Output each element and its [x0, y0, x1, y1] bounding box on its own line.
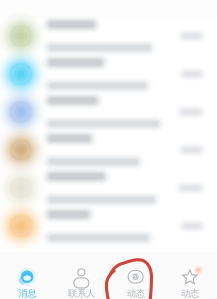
button[interactable]	[0, 207, 217, 245]
button[interactable]	[0, 55, 217, 93]
button[interactable]: 动态	[108, 252, 163, 299]
button[interactable]: 联系人	[54, 252, 108, 299]
staticText: 动态	[127, 288, 145, 299]
button[interactable]	[0, 17, 217, 55]
button[interactable]	[0, 131, 217, 169]
staticText: 联系人	[68, 288, 95, 299]
staticText: 消息	[18, 288, 36, 299]
staticText: 动态	[181, 288, 199, 299]
button[interactable]: 消息	[0, 252, 54, 299]
button[interactable]	[0, 169, 217, 207]
button[interactable]: 动态	[163, 252, 217, 299]
button[interactable]	[0, 93, 217, 131]
